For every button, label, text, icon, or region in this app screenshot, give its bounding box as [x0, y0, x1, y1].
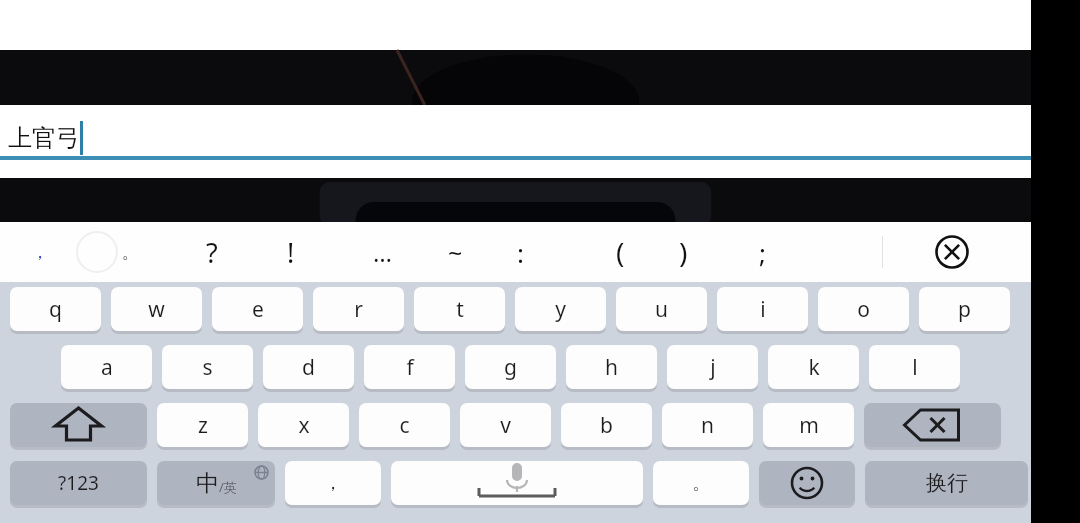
- staticText: p: [958, 295, 971, 324]
- staticText: …: [373, 236, 392, 269]
- button[interactable]: (: [588, 222, 652, 282]
- button[interactable]: d: [263, 345, 354, 392]
- button[interactable]: a: [61, 345, 152, 392]
- button[interactable]: m: [763, 403, 854, 450]
- staticText: o: [857, 295, 870, 324]
- button[interactable]: ?: [180, 222, 244, 282]
- button[interactable]: k: [768, 345, 859, 392]
- button[interactable]: 。: [98, 222, 162, 282]
- button[interactable]: Backspace: [864, 403, 1001, 450]
- staticText: ;: [759, 235, 766, 270]
- button[interactable]: j: [667, 345, 758, 392]
- button[interactable]: u: [616, 287, 707, 334]
- staticText: z: [198, 411, 208, 440]
- button[interactable]: Space: [391, 461, 643, 508]
- button[interactable]: ?123: [10, 461, 147, 508]
- staticText: 上官弓: [8, 123, 80, 153]
- staticText: c: [399, 411, 410, 440]
- button[interactable]: 。: [653, 461, 749, 508]
- button[interactable]: w: [111, 287, 202, 334]
- staticText: u: [655, 295, 668, 324]
- staticText: 换行: [926, 470, 968, 496]
- button[interactable]: p: [919, 287, 1010, 334]
- staticText: ): [679, 233, 688, 271]
- staticText: w: [148, 295, 165, 324]
- staticText: e: [252, 295, 264, 324]
- staticText: h: [605, 353, 618, 382]
- button[interactable]: 换行: [865, 461, 1028, 508]
- staticText: :: [517, 235, 524, 270]
- button[interactable]: c: [359, 403, 450, 450]
- button[interactable]: g: [465, 345, 556, 392]
- staticText: (: [616, 233, 625, 271]
- button[interactable]: y: [515, 287, 606, 334]
- button[interactable]: Clear input: [915, 222, 989, 282]
- staticText: 。: [122, 242, 139, 263]
- staticText: k: [808, 353, 820, 382]
- staticText: !: [287, 234, 295, 271]
- button[interactable]: b: [561, 403, 652, 450]
- staticText: q: [49, 295, 62, 324]
- button[interactable]: e: [212, 287, 303, 334]
- staticText: n: [701, 411, 714, 440]
- staticText: /英: [219, 478, 237, 496]
- button[interactable]: 上官弓: [0, 105, 1031, 178]
- staticText: y: [555, 295, 566, 324]
- staticText: ，: [324, 472, 342, 495]
- staticText: s: [202, 353, 213, 382]
- staticText: ?123: [58, 470, 99, 496]
- button[interactable]: …: [350, 222, 414, 282]
- button[interactable]: t: [414, 287, 505, 334]
- staticText: d: [302, 353, 315, 382]
- button[interactable]: !: [259, 222, 323, 282]
- staticText: b: [600, 411, 613, 440]
- button[interactable]: Emoji: [759, 461, 855, 508]
- staticText: 中: [196, 469, 219, 498]
- button[interactable]: n: [662, 403, 753, 450]
- button[interactable]: ): [651, 222, 715, 282]
- button[interactable]: 中: [157, 461, 275, 508]
- button[interactable]: ，: [8, 222, 72, 282]
- button[interactable]: ~: [423, 222, 487, 282]
- staticText: ~: [448, 235, 463, 269]
- staticText: f: [406, 353, 414, 382]
- staticText: r: [354, 295, 363, 324]
- button[interactable]: Shift: [10, 403, 147, 450]
- staticText: g: [504, 353, 517, 382]
- button[interactable]: :: [488, 222, 552, 282]
- button[interactable]: i: [717, 287, 808, 334]
- button[interactable]: l: [869, 345, 960, 392]
- button[interactable]: x: [258, 403, 349, 450]
- staticText: l: [912, 353, 918, 382]
- button[interactable]: v: [460, 403, 551, 450]
- staticText: j: [710, 353, 716, 382]
- button[interactable]: ;: [730, 222, 794, 282]
- button[interactable]: o: [818, 287, 909, 334]
- staticText: 。: [692, 472, 710, 495]
- button[interactable]: ，: [285, 461, 381, 508]
- staticText: t: [456, 295, 464, 324]
- button[interactable]: h: [566, 345, 657, 392]
- staticText: a: [101, 353, 113, 382]
- button[interactable]: f: [364, 345, 455, 392]
- staticText: m: [799, 411, 819, 440]
- staticText: ?: [206, 234, 218, 271]
- staticText: x: [298, 411, 310, 440]
- staticText: i: [760, 295, 766, 324]
- staticText: ，: [31, 241, 49, 264]
- button[interactable]: z: [157, 403, 248, 450]
- button[interactable]: s: [162, 345, 253, 392]
- staticText: v: [500, 411, 511, 440]
- button[interactable]: q: [10, 287, 101, 334]
- button[interactable]: r: [313, 287, 404, 334]
